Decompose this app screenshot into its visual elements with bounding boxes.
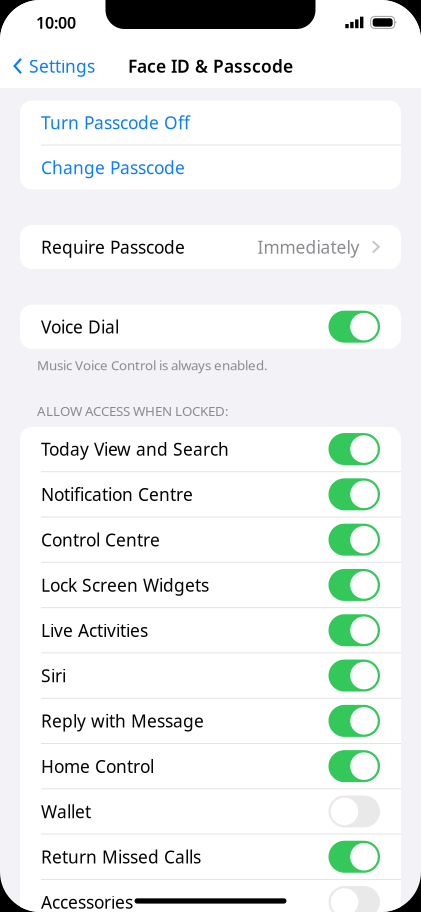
button[interactable]: Change Passcode [20,145,401,189]
button[interactable]: Today View and Search [20,427,401,471]
staticText: Settings [29,54,95,77]
button[interactable]: Wallet [20,789,401,834]
button[interactable]: Return Missed Calls [20,835,401,879]
button[interactable]: Notification Centre [20,472,401,516]
staticText: Immediately [257,235,359,258]
staticText: Reply with Message [41,709,204,732]
staticText: Wallet [41,800,91,823]
button[interactable]: Settings [0,44,103,88]
button[interactable]: Voice Dial [20,304,401,349]
staticText: Home Control [41,755,154,778]
staticText: Accessories [41,891,133,912]
staticText: Today View and Search [41,438,229,461]
staticText: Require Passcode [41,235,185,258]
button[interactable]: Siri [20,653,401,698]
staticText: Music Voice Control is always enabled. [37,356,268,374]
button[interactable]: Live Activities [20,608,401,652]
button[interactable]: Require Passcode [20,225,401,269]
staticText: Control Centre [41,528,160,551]
staticText: Change Passcode [41,156,185,179]
staticText: Turn Passcode Off [41,111,190,134]
staticText: 10:00 [36,12,76,33]
button[interactable]: Accessories [20,880,401,912]
staticText: Siri [41,664,66,687]
staticText: Face ID & Passcode [128,54,293,77]
staticText: Live Activities [41,619,148,642]
staticText: Return Missed Calls [41,845,201,868]
staticText: Voice Dial [41,315,119,338]
button[interactable]: Turn Passcode Off [20,100,401,144]
button[interactable]: Reply with Message [20,699,401,743]
button[interactable]: Lock Screen Widgets [20,563,401,607]
button[interactable]: Control Centre [20,517,401,562]
button[interactable]: Home Control [20,744,401,788]
staticText: ALLOW ACCESS WHEN LOCKED: [37,402,229,420]
staticText: Lock Screen Widgets [41,573,209,596]
staticText: Notification Centre [41,483,193,506]
